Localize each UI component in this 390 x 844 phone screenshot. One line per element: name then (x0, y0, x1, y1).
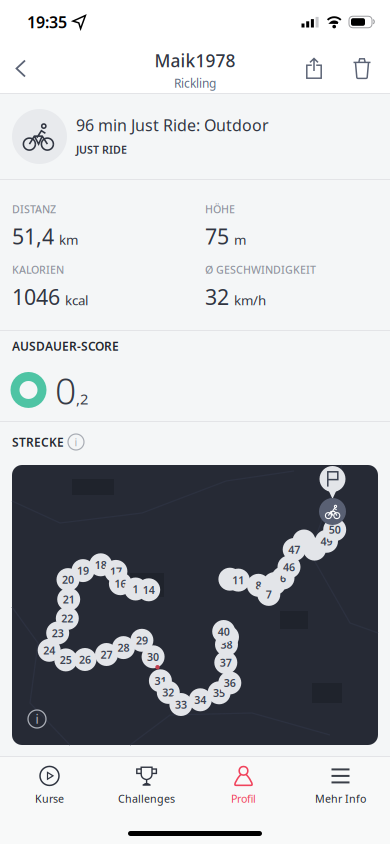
staticText: 37 (220, 655, 232, 670)
staticText: 1046 (12, 283, 60, 311)
staticText: Ø GESCHWINDIGKEIT (205, 262, 316, 277)
staticText: km/h (234, 291, 266, 309)
button[interactable]: Profil (195, 760, 292, 809)
staticText: 75 (205, 222, 229, 250)
button[interactable]: Route info (66, 432, 86, 452)
staticText: Maik1978 (154, 49, 235, 72)
staticText: 32 (162, 685, 174, 699)
staticText: 22 (61, 611, 73, 625)
staticText: DISTANZ (12, 202, 56, 216)
staticText: km (59, 231, 78, 248)
staticText: 33 (175, 697, 187, 712)
staticText: 31 (154, 674, 166, 688)
staticText: 7 (266, 587, 272, 601)
staticText: HÖHE (205, 202, 235, 216)
staticText: 19:35 (27, 11, 67, 33)
staticText: 0,2 (55, 365, 88, 415)
staticText: i (74, 435, 77, 449)
staticText: 14 (143, 583, 155, 597)
staticText: 30 (147, 650, 159, 664)
staticText: 25 (60, 653, 72, 667)
staticText: 27 (100, 647, 112, 662)
button[interactable]: Mehr Info (292, 760, 389, 809)
staticText: 6 (280, 571, 286, 585)
staticText: 46 (283, 560, 295, 574)
staticText: 35 (213, 686, 225, 700)
staticText: kcal (65, 291, 88, 309)
staticText: 20 (62, 572, 74, 587)
staticText: 26 (79, 652, 91, 667)
staticText: JUST RIDE (76, 142, 127, 157)
staticText: 34 (194, 693, 206, 707)
staticText: 17 (110, 564, 122, 578)
button[interactable]: Challenges (98, 760, 195, 809)
staticText: 29 (136, 633, 148, 647)
staticText: Rickling (174, 75, 216, 91)
staticText: m (234, 231, 246, 248)
staticText: Kurse (35, 791, 64, 806)
button[interactable]: Share (290, 46, 338, 90)
staticText: i (35, 711, 38, 727)
button[interactable]: Map info (23, 705, 51, 733)
button[interactable]: Kurse (1, 760, 98, 809)
staticText: 28 (117, 640, 129, 655)
staticText: 24 (43, 643, 55, 657)
staticText: 8 (255, 578, 261, 592)
staticText: 50 (329, 523, 341, 537)
staticText: 1 (133, 582, 139, 596)
staticText: 47 (288, 542, 300, 557)
staticText: 96 min Just Ride: Outdoor (76, 114, 269, 135)
staticText: 39 (221, 630, 233, 644)
button[interactable]: Back (0, 46, 42, 90)
staticText: 21 (63, 592, 75, 606)
staticText: Challenges (118, 791, 175, 806)
staticText: Mehr Info (315, 791, 366, 806)
button[interactable]: Delete (338, 46, 386, 90)
staticText: 38 (220, 637, 232, 652)
staticText: 11 (232, 573, 244, 587)
staticText: AUSDAUER-SCORE (12, 338, 119, 354)
staticText: 51,4 (12, 222, 54, 250)
staticText: 32 (205, 283, 229, 311)
staticText: 19 (77, 563, 89, 578)
staticText: 23 (52, 626, 64, 640)
staticText: 40 (218, 624, 230, 639)
staticText: KALORIEN (12, 262, 64, 277)
staticText: Profil (231, 791, 256, 806)
staticText: 16 (114, 577, 126, 591)
staticText: 49 (320, 534, 332, 548)
staticText: 36 (224, 676, 236, 690)
staticText: 18 (95, 558, 107, 572)
staticText: STRECKE (12, 434, 64, 450)
